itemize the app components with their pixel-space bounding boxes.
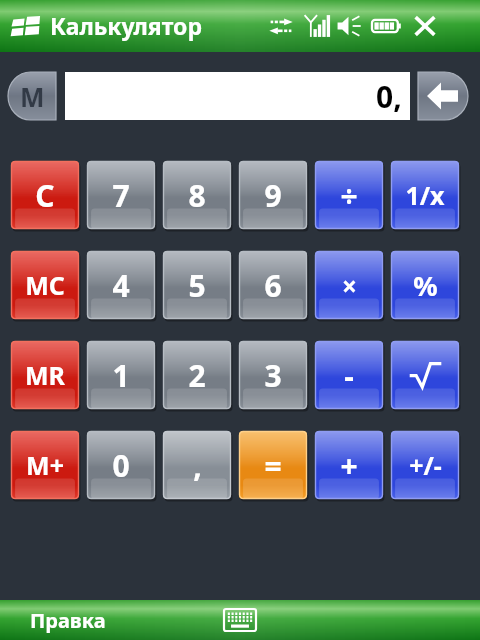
staticText: 0 (112, 445, 130, 486)
other: Battery (372, 17, 402, 35)
button[interactable]: 0 (87, 431, 155, 499)
staticText: Правка (30, 607, 106, 634)
button[interactable]: - (315, 341, 383, 409)
button[interactable]: , (163, 431, 231, 499)
button[interactable]: Правка (30, 600, 150, 640)
staticText: C (35, 175, 55, 216)
staticText: MR (25, 358, 65, 392)
other: Volume (336, 15, 362, 37)
button[interactable]: 6 (239, 251, 307, 319)
staticText: 1/x (405, 178, 445, 212)
staticText: 9 (264, 175, 282, 216)
staticText: % (413, 267, 438, 304)
button[interactable]: % (391, 251, 459, 319)
staticText: 7 (112, 175, 130, 216)
staticText: 6 (264, 265, 282, 306)
button[interactable]: 7 (87, 161, 155, 229)
staticText: × (342, 268, 357, 303)
button[interactable]: = (239, 431, 307, 499)
button[interactable]: 3 (239, 341, 307, 409)
button[interactable]: 1 (87, 341, 155, 409)
button[interactable]: 1/x (391, 161, 459, 229)
button[interactable]: Backspace (418, 72, 468, 120)
button[interactable]: 9 (239, 161, 307, 229)
staticText: +/- (409, 448, 442, 482)
staticText: 4 (112, 265, 130, 306)
button[interactable]: M+ (11, 431, 79, 499)
button[interactable]: +/- (391, 431, 459, 499)
staticText: M (20, 79, 45, 114)
button[interactable] (391, 341, 459, 409)
staticText: - (344, 355, 354, 396)
staticText: 1 (112, 355, 130, 396)
button[interactable]: C (11, 161, 79, 229)
button[interactable]: MC (11, 251, 79, 319)
staticText: 5 (188, 265, 206, 306)
staticText: , (193, 445, 202, 486)
button[interactable]: 0, (65, 72, 410, 120)
other: Signal strength (302, 13, 328, 39)
staticText: 0, (376, 76, 402, 117)
staticText: Калькулятор (50, 10, 203, 41)
staticText: M+ (26, 448, 64, 482)
button[interactable]: 5 (163, 251, 231, 319)
button[interactable]: 8 (163, 161, 231, 229)
button[interactable]: + (315, 431, 383, 499)
button[interactable]: ÷ (315, 161, 383, 229)
button[interactable]: Close (412, 13, 438, 39)
staticText: = (264, 445, 282, 486)
staticText: 3 (264, 355, 282, 396)
staticText: 8 (188, 175, 206, 216)
button[interactable]: 2 (163, 341, 231, 409)
button[interactable]: MR (11, 341, 79, 409)
staticText: MC (25, 268, 65, 302)
button[interactable]: × (315, 251, 383, 319)
other: Connectivity (268, 14, 294, 38)
button[interactable]: Memory (8, 72, 56, 120)
staticText: + (340, 445, 358, 486)
button[interactable]: Keyboard (218, 603, 262, 637)
button[interactable]: 4 (87, 251, 155, 319)
staticText: 2 (188, 355, 206, 396)
staticText: ÷ (340, 175, 358, 216)
